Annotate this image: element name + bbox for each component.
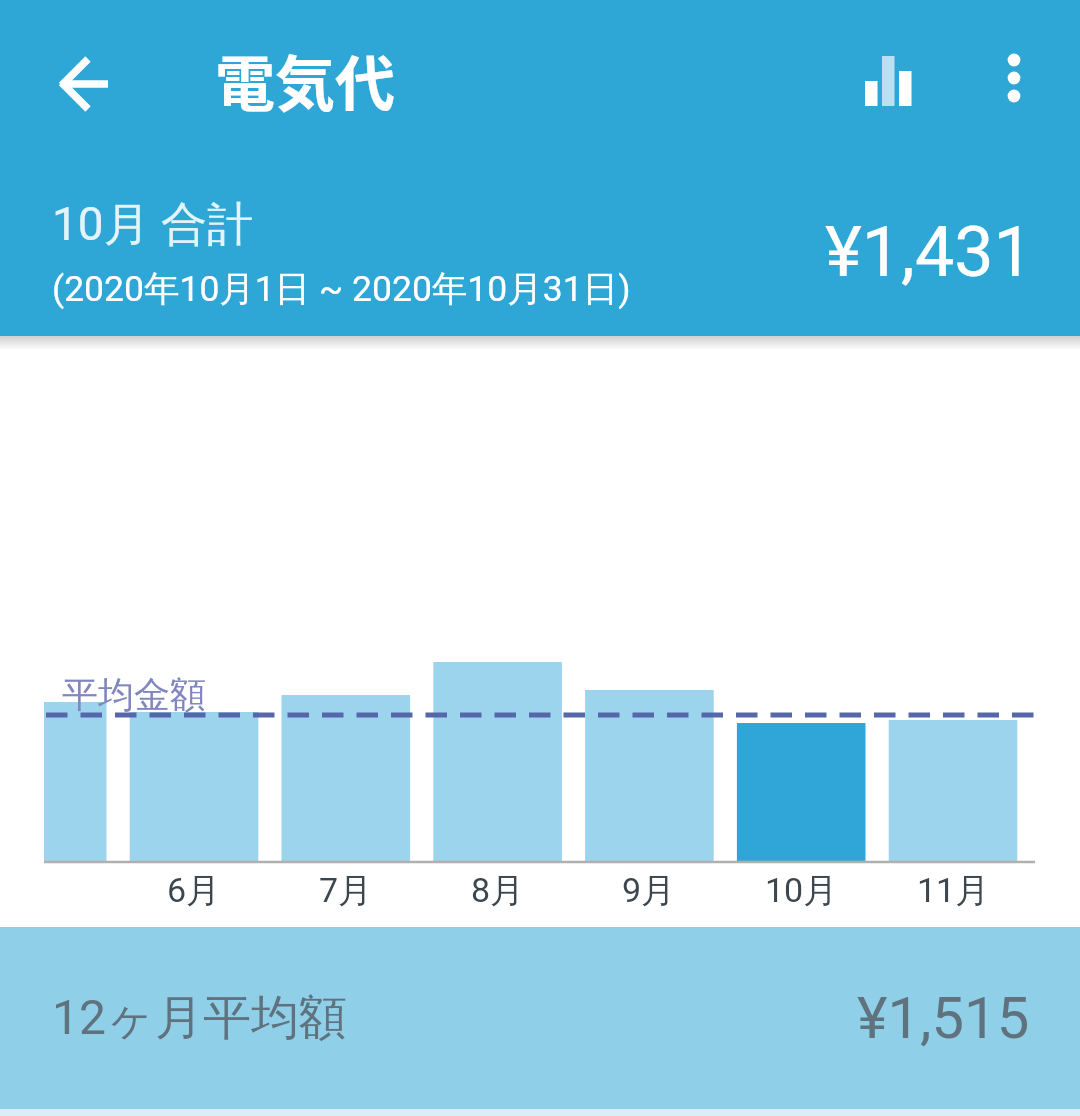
staticText: 11月 bbox=[917, 869, 990, 912]
staticText: 電気代 bbox=[215, 36, 395, 123]
staticText: 12ヶ月平均額 bbox=[52, 988, 348, 1048]
staticText: ¥1,515 bbox=[857, 984, 1030, 1052]
staticText: ¥1,431 bbox=[825, 211, 1033, 289]
staticText: 8月 bbox=[471, 869, 525, 912]
staticText: 平均金額 bbox=[62, 672, 206, 712]
button[interactable] bbox=[40, 56, 130, 100]
staticText: 10月 bbox=[765, 869, 838, 912]
staticText: 10月 合計 bbox=[52, 196, 254, 250]
button[interactable] bbox=[844, 56, 932, 100]
staticText: (2020年10月1日 ~ 2020年10月31日) bbox=[52, 267, 631, 312]
staticText: 9月 bbox=[622, 869, 676, 912]
staticText: 7月 bbox=[319, 869, 373, 912]
button[interactable] bbox=[980, 50, 1048, 106]
staticText: 6月 bbox=[167, 869, 221, 912]
